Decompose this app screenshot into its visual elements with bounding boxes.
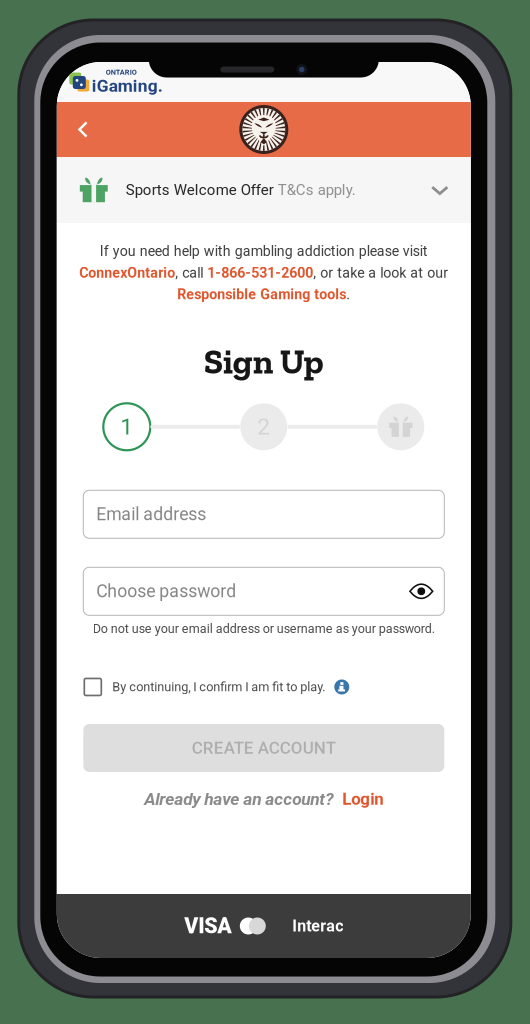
staticText: 1 [120, 413, 133, 440]
staticText: ConnexOntario [79, 265, 175, 281]
staticText: , call [175, 265, 207, 281]
staticText: T&Cs apply. [278, 181, 356, 199]
button[interactable]: Show password [398, 568, 444, 615]
staticText: , or take a look at our [313, 265, 448, 281]
staticText: VISA [184, 913, 232, 938]
staticText: iGaming. [92, 76, 163, 96]
button[interactable]: CREATE ACCOUNT [83, 724, 444, 772]
button[interactable]: 1-866-531-2600 [207, 265, 313, 281]
staticText: Do not use your email address or usernam… [93, 621, 435, 636]
staticText: Interac [292, 917, 343, 935]
staticText: . [346, 286, 350, 303]
staticText: CREATE ACCOUNT [192, 738, 336, 758]
staticText: Choose password [96, 581, 236, 602]
staticText: If you need help with gambling addiction… [100, 243, 428, 260]
staticText: Email address [96, 504, 206, 525]
staticText: 1-866-531-2600 [207, 265, 313, 281]
staticText: Sign Up [204, 341, 324, 382]
staticText: Responsible Gaming tools [177, 286, 346, 303]
staticText: ONTARIO [106, 68, 137, 77]
button[interactable]: LeoVegas home [239, 105, 288, 154]
button[interactable]: Sports Welcome Offer [57, 157, 471, 223]
button[interactable]: Responsible Gaming tools [177, 286, 346, 303]
staticText: Already have an account? [144, 789, 333, 809]
staticText: 2 [257, 413, 270, 440]
button[interactable]: Login [333, 789, 383, 809]
staticText: Sports Welcome Offer [126, 181, 274, 199]
staticText: Login [342, 789, 383, 809]
button[interactable]: Back [57, 102, 109, 157]
staticText: By continuing, I confirm I am fit to pla… [112, 680, 325, 694]
button[interactable]: By continuing, I confirm I am fit to pla… [83, 672, 444, 702]
button[interactable]: ConnexOntario [79, 265, 175, 281]
